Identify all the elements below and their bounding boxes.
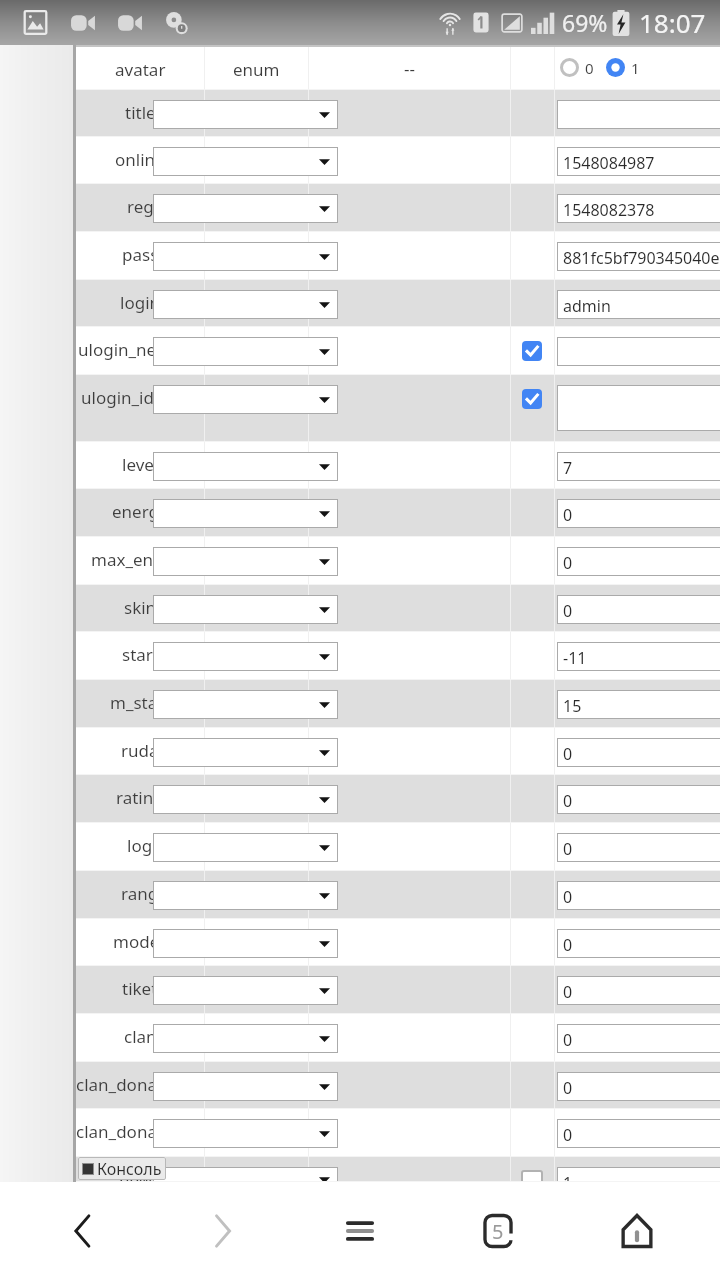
button[interactable]: Function for ulogin_identity [153,385,338,414]
button[interactable]: Function for m_start [153,690,338,719]
button[interactable]: title [76,90,720,137]
staticText: level [122,453,159,476]
button[interactable]: Value for energy [557,499,720,528]
button[interactable]: Back [28,1187,138,1275]
button[interactable]: Function for level [153,452,338,481]
button[interactable]: Value for moder [557,929,720,958]
button[interactable]: Value for news [557,1167,720,1192]
button[interactable]: clan_donate_gold [76,1062,720,1109]
button[interactable]: Function for clan_donate_almaz [153,1119,338,1148]
button[interactable]: Value for online [557,147,720,176]
button[interactable]: ulogin_identity [76,375,720,442]
button[interactable]: Value for clan_donate_gold [557,1072,720,1101]
button[interactable]: log [76,823,720,871]
button[interactable]: Function for tiket [153,976,338,1005]
button[interactable]: Function for rang [153,881,338,910]
button[interactable]: start [76,632,720,680]
button[interactable]: rang [76,871,720,919]
button[interactable]: clan_donate_almaz [76,1109,720,1157]
button[interactable]: Value for rating [557,785,720,814]
button[interactable]: Function for skin [153,595,338,624]
button[interactable]: Value for reg [557,194,720,223]
button[interactable]: Value for clan [557,1024,720,1053]
button[interactable]: ruda [76,728,720,775]
button[interactable]: Function for clan [153,1024,338,1053]
button[interactable]: Function for login [153,290,338,319]
button[interactable]: Value for log [557,833,720,862]
button[interactable]: Value 0 [558,56,581,79]
button[interactable]: Menu [305,1187,415,1275]
button[interactable]: news [76,1157,720,1182]
button[interactable]: max_energy [76,537,720,585]
button[interactable]: moder [76,919,720,966]
button[interactable]: Value for clan_donate_almaz [557,1119,720,1148]
button[interactable]: Value for title [557,100,720,129]
staticText: skin [124,596,157,619]
button[interactable]: Value for ulogin_identity [557,385,720,431]
button[interactable]: level [76,442,720,489]
button[interactable]: Value for ulogin_network [557,337,720,366]
button[interactable]: Function for title [153,100,338,129]
button[interactable]: Value for rang [557,881,720,910]
button[interactable]: Консоль [78,1157,166,1180]
button[interactable]: Function for ruda [153,738,338,767]
button[interactable]: Value for ruda [557,738,720,767]
button[interactable]: Function for max_energy [153,547,338,576]
button[interactable]: pass [76,232,720,280]
staticText: 0 [563,934,573,956]
button[interactable]: Value for pass [557,242,720,271]
button[interactable]: Function for energy [153,499,338,528]
button[interactable]: Function for clan_donate_gold [153,1072,338,1101]
staticText: 0 [563,1077,573,1099]
button[interactable]: rating [76,775,720,823]
button[interactable]: Tabs [443,1187,553,1275]
button[interactable]: clan [76,1014,720,1062]
button[interactable]: Value for tiket [557,976,720,1005]
button[interactable]: m_start [76,680,720,728]
button[interactable]: Function for start [153,642,338,671]
staticText: clan [124,1025,157,1048]
button[interactable]: Function for pass [153,242,338,271]
button[interactable]: Forward [167,1187,277,1275]
button[interactable]: skin [76,585,720,632]
button[interactable]: Value for m_start [557,690,720,719]
button[interactable]: Home [582,1187,692,1275]
staticText: Консоль [97,1158,162,1180]
button[interactable]: Function for news [153,1167,338,1192]
button[interactable]: Function for rating [153,785,338,814]
button[interactable]: online [76,137,720,184]
staticText: 0 [563,838,573,860]
button[interactable]: reg [76,184,720,232]
button[interactable]: Null for ulogin_identity [522,389,542,409]
button[interactable]: Value for start [557,642,720,671]
staticText: ruda [121,739,159,762]
button[interactable]: avatar [76,47,720,90]
button[interactable]: Value 1 [604,56,627,79]
button[interactable]: Value for max_energy [557,547,720,576]
button[interactable]: energy [76,489,720,537]
button[interactable]: Function for reg [153,194,338,223]
button[interactable]: Null for ulogin_network [522,341,542,361]
button[interactable]: ulogin_network [76,327,720,375]
staticText: log [127,834,153,857]
button[interactable]: Null for news [522,1171,542,1191]
button[interactable]: login [76,280,720,327]
button[interactable]: Function for moder [153,929,338,958]
button[interactable]: Function for log [153,833,338,862]
button[interactable]: Value for skin [557,595,720,624]
button[interactable]: Function for ulogin_network [153,337,338,366]
button[interactable]: Function for online [153,147,338,176]
button[interactable]: Value for level [557,452,720,481]
staticText: rating [116,786,164,809]
button[interactable]: Value for login [557,290,720,319]
button[interactable]: tiket [76,966,720,1014]
